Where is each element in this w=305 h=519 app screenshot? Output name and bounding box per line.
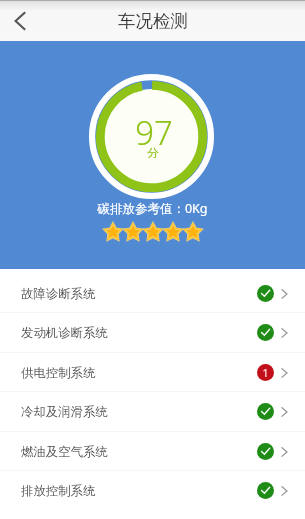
staticText: 1 <box>262 366 269 380</box>
button[interactable]: 供电控制系统 <box>0 353 305 392</box>
staticText: 发动机诊断系统 <box>21 325 257 341</box>
staticText: 燃油及空气系统 <box>21 444 257 460</box>
button[interactable]: 排放控制系统 <box>0 471 305 510</box>
staticText: 97 <box>135 110 173 155</box>
staticText: 冷却及润滑系统 <box>21 404 257 420</box>
staticText: 车况检测 <box>118 10 188 32</box>
staticText: 排放控制系统 <box>21 483 257 499</box>
staticText: 碳排放参考值：0Kg <box>97 200 208 217</box>
button[interactable]: 发动机诊断系统 <box>0 313 305 352</box>
staticText: 供电控制系统 <box>21 365 257 381</box>
staticText: 故障诊断系统 <box>21 286 257 302</box>
staticText: 分 <box>147 146 159 160</box>
button[interactable]: Back <box>0 0 40 41</box>
button[interactable]: 故障诊断系统 <box>0 274 305 313</box>
button[interactable]: 燃油及空气系统 <box>0 432 305 471</box>
button[interactable]: 冷却及润滑系统 <box>0 392 305 431</box>
